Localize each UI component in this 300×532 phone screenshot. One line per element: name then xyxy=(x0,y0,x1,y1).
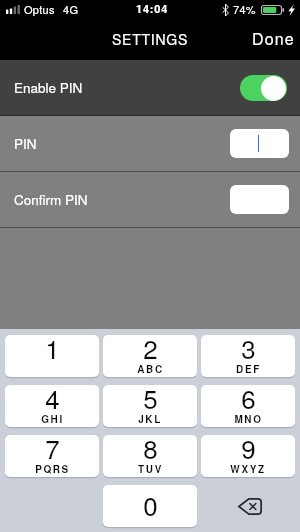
staticText: 6 xyxy=(241,385,256,416)
button[interactable]: Confirm PIN xyxy=(0,172,300,227)
button[interactable] xyxy=(230,185,289,214)
staticText: 9 xyxy=(241,435,256,466)
staticText: Confirm PIN xyxy=(14,190,88,209)
staticText: 74% xyxy=(233,1,256,17)
staticText: GHI xyxy=(41,412,64,426)
button[interactable]: 9 xyxy=(201,435,295,477)
button[interactable]: Delete xyxy=(201,485,295,527)
staticText: JKL xyxy=(138,412,162,426)
button[interactable]: 7 xyxy=(5,435,99,477)
staticText: TUV xyxy=(138,462,163,476)
button[interactable]: 3 xyxy=(201,335,295,377)
button[interactable]: 1 xyxy=(5,335,99,377)
staticText: 2 xyxy=(143,335,158,366)
button[interactable]: Enable PIN toggle, on xyxy=(240,75,287,101)
staticText: 7 xyxy=(45,435,60,466)
staticText: 14:04 xyxy=(136,1,169,17)
staticText: DEF xyxy=(236,362,261,376)
button[interactable]: PIN xyxy=(0,116,300,171)
button[interactable]: Enable PIN xyxy=(0,60,300,115)
staticText: 4G xyxy=(63,1,79,17)
staticText: Done xyxy=(252,27,295,50)
staticText: 5 xyxy=(143,385,158,416)
button[interactable] xyxy=(230,129,289,158)
staticText: Optus xyxy=(24,1,55,17)
button[interactable]: Done xyxy=(242,19,300,58)
staticText: 8 xyxy=(143,435,158,466)
button[interactable]: 0 xyxy=(103,485,197,527)
staticText: MNO xyxy=(234,412,263,426)
button[interactable]: 2 xyxy=(103,335,197,377)
button[interactable]: 8 xyxy=(103,435,197,477)
staticText: WXYZ xyxy=(230,462,266,476)
button[interactable]: 5 xyxy=(103,385,197,427)
staticText: 1 xyxy=(45,335,60,366)
staticText: 4 xyxy=(45,385,60,416)
button[interactable]: 4 xyxy=(5,385,99,427)
staticText: Enable PIN xyxy=(14,78,83,97)
staticText: PIN xyxy=(14,134,37,153)
staticText: 3 xyxy=(241,335,256,366)
staticText: PQRS xyxy=(35,462,70,476)
staticText: 0 xyxy=(143,486,158,523)
staticText: ABC xyxy=(137,362,164,376)
staticText: SETTINGS xyxy=(112,29,189,49)
button[interactable]: 6 xyxy=(201,385,295,427)
